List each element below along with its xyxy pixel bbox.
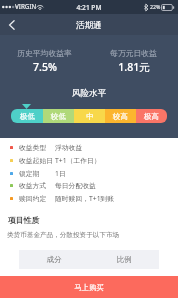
staticText: 4:21 PM: [0, 3, 178, 12]
button[interactable]: 比例: [89, 250, 159, 269]
staticText: 极低: [20, 112, 35, 121]
staticText: 每万元日收益: [110, 48, 157, 58]
button[interactable]: 极低: [11, 109, 43, 123]
button[interactable]: 收益方式: [0, 179, 178, 192]
staticText: 收益起始日: [19, 156, 55, 165]
staticText: 活期通: [0, 20, 178, 31]
staticText: 浮动收益: [55, 143, 83, 152]
staticText: 比例: [116, 255, 132, 265]
button[interactable]: 赎回约定: [0, 192, 178, 205]
staticText: 随时赎回，T+1到账: [55, 194, 115, 203]
staticText: 1日: [55, 169, 66, 178]
button[interactable]: 收益类型: [0, 141, 178, 154]
staticText: 类货币基金产品，分散投资于以下市场: [7, 231, 120, 239]
staticText: 赎回约定: [19, 194, 55, 203]
staticText: 马上购买: [74, 283, 104, 292]
button[interactable]: 较高: [105, 109, 136, 123]
button[interactable]: 马上购买: [0, 276, 178, 298]
staticText: 风险水平: [0, 88, 178, 99]
staticText: 每日分配收益: [55, 181, 96, 190]
staticText: 较高: [113, 112, 128, 121]
staticText: 项目性质: [8, 215, 40, 225]
staticText: 22%: [150, 3, 161, 10]
button[interactable]: Back: [0, 14, 24, 35]
staticText: VIRGIN: [15, 2, 37, 11]
staticText: 较低: [51, 112, 66, 121]
staticText: 极高: [144, 112, 159, 121]
button[interactable]: 收益起始日: [0, 154, 178, 167]
staticText: 锁定期: [19, 169, 55, 178]
button[interactable]: 极高: [136, 109, 167, 123]
staticText: 收益方式: [19, 181, 55, 190]
staticText: 历史平均收益率: [17, 48, 72, 58]
staticText: 1.81元: [118, 60, 150, 74]
staticText: 成分: [46, 255, 62, 265]
button[interactable]: 较低: [43, 109, 74, 123]
staticText: T+1（工作日）: [55, 156, 101, 165]
staticText: 收益类型: [19, 143, 55, 152]
button[interactable]: 锁定期: [0, 167, 178, 180]
button[interactable]: 成分: [19, 250, 89, 269]
button[interactable]: 中: [74, 109, 105, 123]
staticText: 7.5%: [33, 60, 57, 74]
staticText: 中: [86, 112, 94, 121]
